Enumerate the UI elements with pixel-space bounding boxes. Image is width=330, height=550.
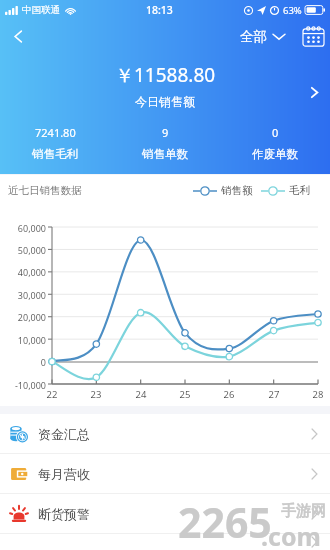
staticText: 销售单数 (142, 147, 188, 161)
staticText: 40,000 (0, 266, 46, 278)
staticText: 作废单数 (252, 147, 298, 161)
staticText: ￥11588.80 (115, 62, 216, 88)
staticText: 销售额 (221, 184, 253, 197)
staticText: 20,000 (0, 311, 46, 323)
staticText: 50,000 (0, 244, 46, 256)
staticText: 断货预警 (38, 506, 90, 522)
staticText: 手游网 (281, 502, 326, 521)
staticText: 中国联通 (22, 4, 60, 16)
button[interactable]: Details (300, 78, 328, 106)
staticText: 近七日销售数据 (8, 184, 82, 197)
staticText: 23 (82, 388, 110, 401)
staticText: .com (261, 519, 321, 550)
staticText: 0 (272, 125, 279, 140)
staticText: 27 (260, 388, 288, 401)
button[interactable]: Back (3, 21, 33, 51)
staticText: 0 (0, 356, 46, 368)
staticText: 毛利 (289, 184, 310, 197)
button[interactable]: 0 (220, 125, 330, 161)
staticText: 26 (215, 388, 243, 401)
button[interactable] (0, 534, 330, 550)
staticText: 60,000 (0, 222, 46, 234)
staticText: 28 (304, 388, 330, 401)
staticText: 今日销售额 (135, 94, 195, 109)
button[interactable]: 9 (110, 125, 220, 161)
button[interactable]: 7241.80 (0, 125, 110, 161)
staticText: 30,000 (0, 289, 46, 301)
staticText: 22 (38, 388, 66, 401)
button[interactable]: 每月营收 (0, 454, 330, 493)
staticText: 24 (127, 388, 155, 401)
staticText: 7241.80 (35, 125, 76, 140)
button[interactable]: 断货预警 (0, 494, 330, 533)
staticText: 资金汇总 (38, 426, 90, 442)
staticText: 2265 (178, 494, 272, 550)
staticText: 63% (283, 4, 302, 17)
staticText: 10,000 (0, 334, 46, 346)
button[interactable]: 全部 (236, 23, 289, 50)
staticText: 18:13 (146, 3, 173, 17)
button[interactable]: Calendar (300, 24, 326, 48)
button[interactable]: 资金汇总 (0, 414, 330, 453)
staticText: 销售毛利 (32, 147, 78, 161)
staticText: 每月营收 (38, 466, 90, 482)
staticText: 25 (171, 388, 199, 401)
staticText: 9 (162, 125, 169, 140)
staticText: -10,000 (0, 379, 46, 391)
staticText: 全部 (240, 28, 267, 45)
